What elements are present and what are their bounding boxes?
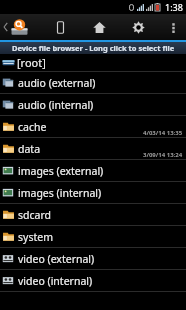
staticText: 4/03/14 13:35 — [143, 129, 183, 137]
button[interactable]: Navigate up — [0, 14, 32, 40]
staticText: video (external) — [18, 252, 95, 266]
staticText: cache — [18, 120, 47, 134]
staticText: 1:38 — [165, 1, 183, 13]
staticText: Device file browser - Long click to sele… — [12, 43, 175, 53]
button[interactable]: data — [0, 138, 186, 159]
button[interactable]: images (internal) — [0, 182, 186, 203]
staticText: system — [18, 230, 53, 244]
button[interactable]: More options — [163, 14, 183, 40]
staticText: video (internal) — [18, 274, 93, 288]
button[interactable]: system — [0, 226, 186, 247]
staticText: [root] — [17, 55, 46, 70]
button[interactable]: images (external) — [0, 160, 186, 181]
staticText: data — [18, 142, 41, 156]
button[interactable]: sdcard — [0, 204, 186, 225]
staticText: audio (internal) — [18, 98, 94, 112]
staticText: images (external) — [18, 164, 104, 178]
button[interactable]: cache — [0, 116, 186, 137]
staticText: images (internal) — [18, 186, 102, 200]
staticText: audio (external) — [18, 76, 96, 90]
staticText: sdcard — [18, 208, 52, 222]
button[interactable]: Device — [50, 14, 70, 40]
button[interactable]: [root] — [0, 54, 186, 71]
button[interactable]: audio (external) — [0, 72, 186, 93]
button[interactable]: video (external) — [0, 248, 186, 269]
button[interactable]: Settings — [128, 14, 148, 40]
button[interactable]: video (internal) — [0, 270, 186, 291]
button[interactable]: Home — [89, 14, 109, 40]
button[interactable]: audio (internal) — [0, 94, 186, 115]
staticText: 3/09/14 13:24 — [143, 151, 183, 159]
